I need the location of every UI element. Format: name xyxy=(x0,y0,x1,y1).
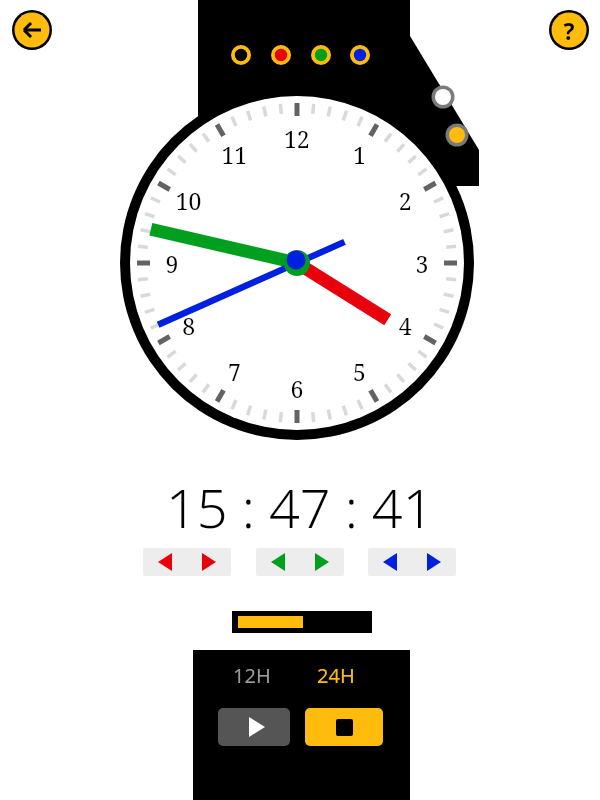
button[interactable]: Indicator two xyxy=(271,45,291,65)
button[interactable]: Increase hours xyxy=(187,548,231,576)
button[interactable]: Decrease minutes xyxy=(256,548,300,576)
button[interactable]: Watch crown button xyxy=(445,123,469,147)
button[interactable]: Start xyxy=(218,708,290,746)
button[interactable]: Back xyxy=(12,10,54,52)
button[interactable]: Increase minutes xyxy=(300,548,344,576)
button[interactable]: 24 hour format xyxy=(306,658,366,690)
button[interactable]: Decrease seconds xyxy=(368,548,412,576)
button[interactable]: Stop xyxy=(305,708,383,746)
button[interactable]: 12 hour format xyxy=(222,658,282,690)
button[interactable]: Indicator one xyxy=(231,45,251,65)
button[interactable]: Indicator three xyxy=(311,45,331,65)
button[interactable]: Indicator four xyxy=(350,45,370,65)
button[interactable]: Increase seconds xyxy=(412,548,456,576)
button[interactable]: Decrease hours xyxy=(143,548,187,576)
button[interactable]: Help xyxy=(548,10,590,52)
button[interactable]: Watch top button xyxy=(431,85,455,109)
